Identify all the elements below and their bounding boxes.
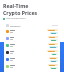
other: Coin icon <box>6 30 9 33</box>
staticText: LIVE MARKET DATA <box>6 17 26 20</box>
button[interactable]: Coin icon <box>4 28 60 35</box>
other: Coin icon <box>6 44 9 47</box>
button[interactable]: Coin icon <box>4 56 60 63</box>
button[interactable]: Coin icon <box>4 63 60 70</box>
staticText: Currency <box>10 24 21 27</box>
button[interactable]: Coin icon <box>4 49 60 56</box>
other: Coin icon <box>6 51 9 54</box>
button[interactable]: Coin icon <box>4 35 60 42</box>
other: Coin icon <box>6 65 9 68</box>
staticText: Real-Time <box>3 2 29 9</box>
other: Coin icon <box>6 58 9 61</box>
staticText: Crypto Prices <box>3 9 38 16</box>
button[interactable]: Coin icon <box>4 42 60 49</box>
other: Coin icon <box>6 37 9 40</box>
